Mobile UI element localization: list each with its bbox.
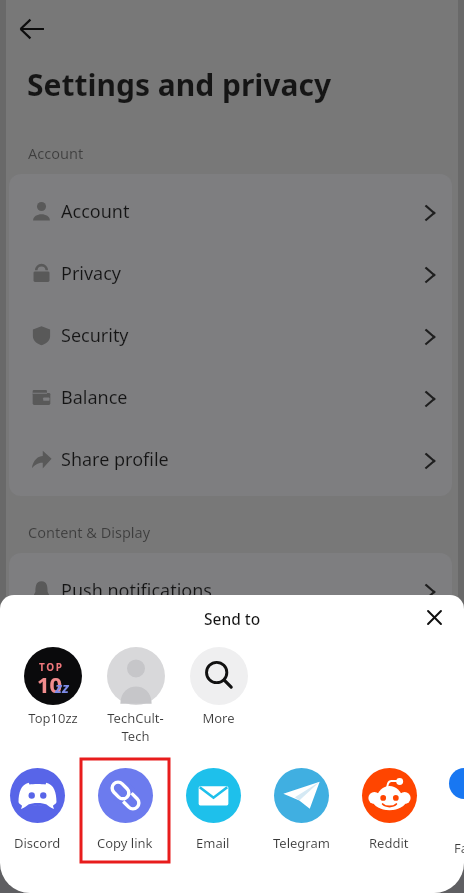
staticText: Content & Display xyxy=(28,522,151,542)
button[interactable]: Balance xyxy=(9,366,452,428)
staticText: Share profile xyxy=(61,447,169,472)
staticText: Language xyxy=(61,640,146,665)
staticText: 10 xyxy=(37,669,63,699)
button[interactable]: Account xyxy=(9,180,452,242)
staticText: More xyxy=(202,709,235,727)
button[interactable]: Back xyxy=(13,10,51,48)
staticText: Copy link xyxy=(97,834,153,852)
staticText: zz xyxy=(55,677,70,697)
staticText: TOP xyxy=(39,660,64,674)
staticText: Discord xyxy=(14,834,61,852)
staticText: Account xyxy=(28,143,84,163)
button[interactable]: Discord xyxy=(0,759,81,862)
staticText: Balance xyxy=(61,385,128,410)
button[interactable]: Push notifications xyxy=(9,559,452,621)
staticText: Privacy xyxy=(61,261,122,286)
button[interactable]: Close xyxy=(414,597,454,637)
staticText: Security xyxy=(61,323,129,348)
button[interactable]: Security xyxy=(9,304,452,366)
staticText: Top10zz xyxy=(28,709,78,727)
button[interactable]: Reddit xyxy=(345,759,433,862)
staticText: Reddit xyxy=(369,834,409,852)
button[interactable]: Language xyxy=(9,621,452,683)
button[interactable]: TechCult- Tech xyxy=(94,647,177,745)
button[interactable]: Telegram xyxy=(257,759,345,862)
staticText: Settings and privacy xyxy=(27,64,332,105)
button[interactable]: Privacy xyxy=(9,242,452,304)
staticText: Push notifications xyxy=(61,578,212,603)
button[interactable]: More xyxy=(177,647,260,727)
button[interactable]: Share profile xyxy=(9,428,452,490)
button[interactable]: Facebook xyxy=(433,759,464,862)
staticText: Email xyxy=(196,834,230,852)
staticText: TechCult- Tech xyxy=(107,709,164,745)
button[interactable]: Email xyxy=(169,759,257,862)
staticText: Account xyxy=(61,199,130,224)
staticText: Telegram xyxy=(273,834,330,852)
button[interactable]: Copy link xyxy=(81,759,169,862)
staticText: Fa xyxy=(454,839,464,857)
button[interactable]: TOP xyxy=(11,647,94,727)
staticText: Send to xyxy=(204,608,261,629)
